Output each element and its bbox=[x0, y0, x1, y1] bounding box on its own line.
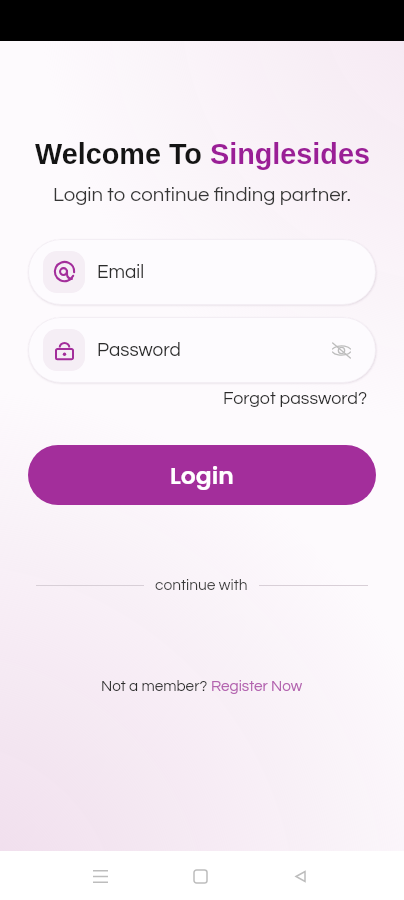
staticText: Welcome To Singlesides bbox=[35, 138, 370, 170]
button[interactable]: Password bbox=[28, 317, 376, 383]
staticText: Email bbox=[97, 262, 145, 282]
button[interactable]: Recent apps bbox=[76, 852, 124, 900]
staticText: Password bbox=[97, 340, 181, 360]
staticText: Not a member? bbox=[101, 678, 211, 694]
button[interactable]: Login bbox=[28, 445, 376, 505]
button[interactable]: Home bbox=[176, 852, 224, 900]
button[interactable]: Register Now bbox=[211, 678, 303, 694]
staticText: Forgot password? bbox=[223, 389, 368, 407]
button[interactable]: Email bbox=[28, 239, 376, 305]
button[interactable]: Show password bbox=[328, 337, 354, 363]
staticText: Login to continue finding partner. bbox=[53, 184, 351, 205]
button[interactable]: Forgot password? bbox=[223, 389, 368, 407]
staticText: Register Now bbox=[211, 678, 303, 694]
staticText: continue with bbox=[155, 577, 248, 593]
button[interactable]: Back bbox=[276, 852, 324, 900]
staticText: Login bbox=[170, 459, 234, 492]
